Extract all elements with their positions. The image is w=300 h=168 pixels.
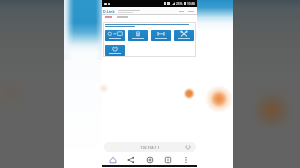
staticText: 25% (176, 2, 183, 6)
button[interactable]: New tab (143, 155, 157, 165)
button[interactable]: 192.168.1.1 (104, 142, 196, 152)
button[interactable]: Home (106, 155, 120, 165)
button[interactable]: Network (105, 30, 125, 41)
staticText: D-Link (103, 9, 115, 14)
button[interactable]: Management (174, 30, 194, 41)
button[interactable]: More options (179, 155, 193, 165)
staticText: 192.168.1.1 (140, 145, 160, 150)
button[interactable]: Settings (128, 30, 148, 41)
button[interactable]: Reboot (105, 45, 125, 56)
button[interactable]: Tabs (161, 155, 175, 165)
other: Reload (186, 145, 190, 149)
staticText: 10:36 (187, 2, 196, 6)
button[interactable]: Extender (151, 30, 171, 41)
button[interactable]: Share (124, 155, 138, 165)
